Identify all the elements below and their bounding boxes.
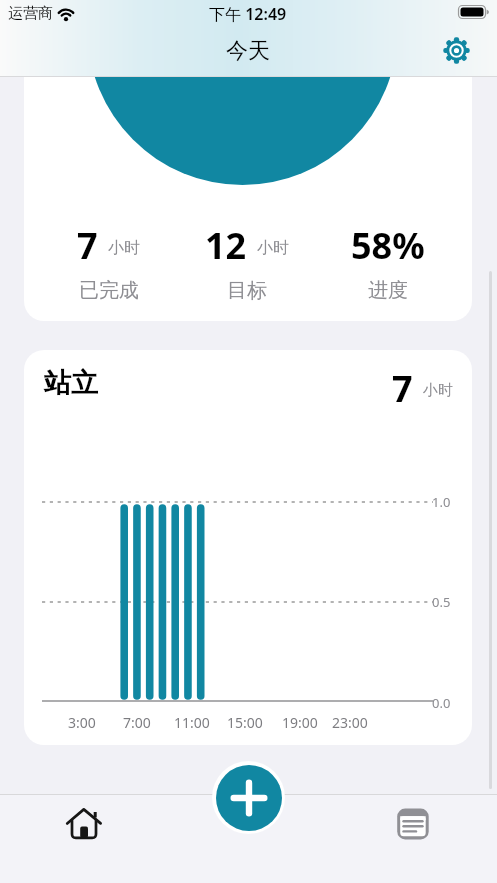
- staticText: 15:00: [227, 713, 263, 732]
- staticText: 11:00: [174, 713, 210, 732]
- button[interactable]: [60, 800, 108, 848]
- staticText: 12: [205, 221, 247, 270]
- button[interactable]: [212, 761, 285, 834]
- staticText: 19:00: [282, 713, 318, 732]
- staticText: 目标: [227, 278, 267, 303]
- staticText: 1.0: [432, 493, 451, 511]
- staticText: 7: [392, 364, 413, 413]
- staticText: 进度: [368, 278, 408, 303]
- staticText: 0.5: [432, 593, 451, 611]
- staticText: 小时: [423, 381, 453, 400]
- staticText: 3:00: [68, 713, 96, 732]
- staticText: 0.0: [432, 694, 451, 712]
- staticText: 7:00: [123, 713, 151, 732]
- staticText: 今天: [226, 37, 270, 65]
- staticText: 已完成: [79, 278, 139, 303]
- button[interactable]: [438, 32, 475, 69]
- button[interactable]: [390, 800, 436, 846]
- staticText: 下午 12:49: [209, 3, 287, 25]
- staticText: 7: [77, 221, 98, 270]
- staticText: 运营商: [8, 4, 53, 23]
- staticText: 小时: [257, 238, 289, 258]
- staticText: 站立: [44, 366, 98, 400]
- staticText: 58%: [351, 221, 425, 270]
- staticText: 23:00: [332, 713, 368, 732]
- staticText: 小时: [108, 238, 140, 258]
